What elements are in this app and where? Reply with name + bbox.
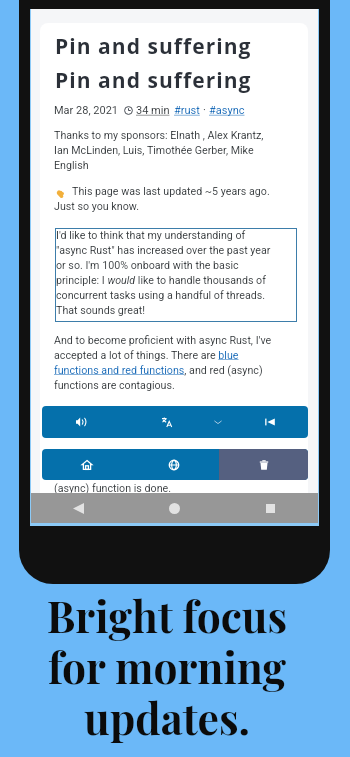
button[interactable]: #rust xyxy=(174,104,200,117)
staticText: Pin and suffering xyxy=(55,32,252,61)
staticText: Bright focus for morning updates. xyxy=(0,587,342,746)
staticText: 34 min xyxy=(136,104,170,117)
button[interactable]: Recent apps xyxy=(222,493,318,523)
staticText: And to become proficient with async Rust… xyxy=(54,334,302,392)
button[interactable]: Translate xyxy=(151,406,183,438)
button[interactable]: Delete xyxy=(248,449,280,480)
button[interactable]: #async xyxy=(209,104,245,117)
staticText: Thanks to my sponsors: Elnath , Alex Kra… xyxy=(54,129,264,172)
button[interactable]: Home xyxy=(71,449,103,480)
button[interactable]: Expand xyxy=(202,406,234,438)
staticText: (async) function is done. xyxy=(54,482,172,495)
button[interactable]: Home xyxy=(126,493,222,523)
staticText: · xyxy=(203,104,206,117)
staticText: Mar 28, 2021 xyxy=(54,104,119,117)
button[interactable]: Previous xyxy=(254,406,286,438)
button[interactable]: Browser xyxy=(158,449,190,480)
button[interactable]: Read aloud xyxy=(65,406,97,438)
staticText: This page was last updated ~5 years ago.… xyxy=(54,185,270,213)
button[interactable]: Back xyxy=(31,493,126,523)
staticText: Pin and suffering xyxy=(55,66,252,95)
staticText: I'd like to think that my understanding … xyxy=(56,229,296,317)
